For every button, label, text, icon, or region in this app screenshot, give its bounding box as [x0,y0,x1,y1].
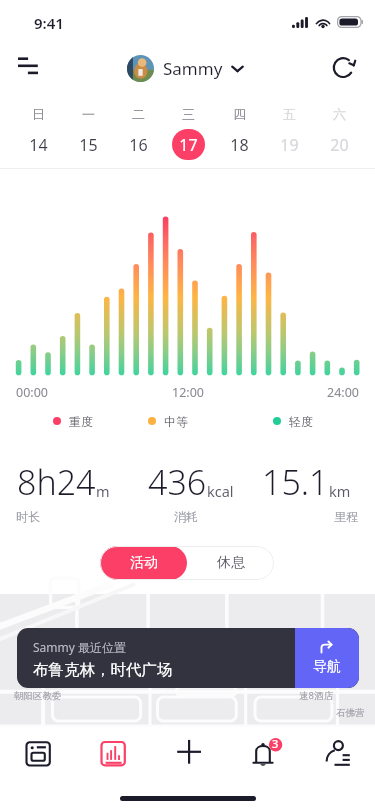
staticText: 朝阳区教委 [14,690,62,702]
button[interactable]: 重度 [53,412,93,430]
staticText: 14 [29,134,48,156]
staticText: 中等 [164,414,188,429]
button[interactable]: 日 [15,100,61,160]
staticText: 三 [182,106,195,122]
staticText: 15.1 [262,459,329,505]
button[interactable]: Refresh [322,44,368,92]
staticText: 里程 [334,509,358,524]
staticText: 16 [129,134,148,156]
button[interactable]: 二 [115,100,161,160]
staticText: m [96,481,110,501]
staticText: 重度 [69,414,93,429]
staticText: 3 [272,736,279,750]
staticText: 日 [32,106,45,122]
staticText: 9:41 [34,13,64,33]
staticText: 五 [283,106,296,122]
button[interactable]: 活动 [100,546,187,580]
staticText: 19 [280,134,299,156]
staticText: 四 [233,106,246,122]
staticText: 速8酒店 [299,689,333,702]
button[interactable]: Sammy 最近位置 [17,628,359,688]
button[interactable]: Dashboard [12,727,64,785]
button[interactable]: Sammy [127,55,244,82]
button[interactable]: 导航 [295,628,359,688]
button[interactable]: Menu [2,44,46,92]
staticText: 活动 [130,554,158,572]
button[interactable]: 五 [266,100,312,160]
staticText: Sammy [163,57,223,80]
staticText: 20 [330,134,349,156]
staticText: 石佛营 [336,707,365,719]
button[interactable]: 休息 [187,546,274,580]
button[interactable]: Notifications [240,727,292,785]
staticText: 轻度 [289,414,313,429]
staticText: 时长 [16,509,40,524]
staticText: kcal [207,481,234,501]
staticText: 8h24 [17,459,96,505]
button[interactable]: Profile [315,727,367,785]
staticText: 六 [333,106,346,122]
staticText: 12:00 [172,384,204,401]
staticText: 布鲁克林，时代广场 [33,660,173,680]
button[interactable]: 六 [316,100,362,160]
button[interactable]: 中等 [148,412,188,430]
staticText: km [329,481,351,501]
staticText: 消耗 [174,509,198,524]
staticText: 24:00 [327,384,359,401]
staticText: 导航 [313,658,341,676]
staticText: 00:00 [16,384,48,401]
button[interactable]: Add [163,727,215,785]
staticText: 15 [79,134,98,156]
button[interactable]: 三 [165,100,211,160]
staticText: 18 [230,134,249,156]
staticText: 一 [82,106,95,122]
staticText: 17 [179,134,198,156]
staticText: 二 [132,106,145,122]
button[interactable]: 一 [65,100,111,160]
button[interactable]: 轻度 [273,412,313,430]
staticText: 休息 [217,554,245,572]
staticText: 436 [148,459,207,505]
staticText: Sammy 最近位置 [33,639,127,655]
button[interactable]: 四 [216,100,262,160]
button[interactable]: Statistics [87,727,139,785]
